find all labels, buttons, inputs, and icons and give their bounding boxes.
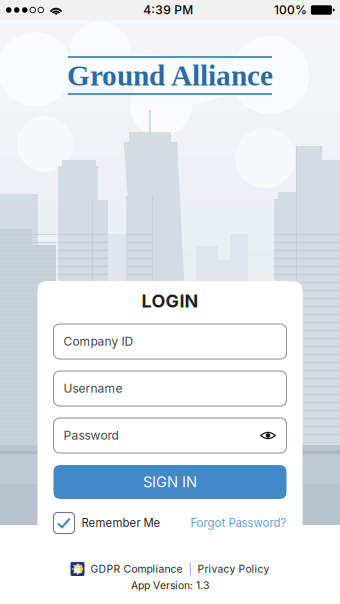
button[interactable]: GDPR Compliance — [84, 563, 188, 575]
staticText: Remember Me — [81, 516, 160, 530]
staticText: Ground Alliance — [67, 59, 273, 92]
staticText: 100% — [274, 3, 307, 17]
button[interactable]: Privacy Policy — [191, 563, 269, 575]
button[interactable]: Forgot Password? — [163, 513, 286, 533]
button[interactable]: Password — [53, 418, 286, 453]
staticText: GDPR Compliance — [90, 563, 182, 575]
staticText: 4:39 PM — [143, 3, 193, 17]
staticText: Username — [63, 381, 122, 396]
staticText: SIGN IN — [143, 473, 197, 491]
staticText: LOGIN — [141, 290, 198, 312]
staticText: App Version: 1.3 — [131, 579, 209, 592]
button[interactable]: SIGN IN — [53, 465, 286, 499]
staticText: Company ID — [63, 334, 133, 349]
staticText: | — [188, 563, 191, 575]
button[interactable]: Remember Me — [53, 513, 163, 533]
button[interactable]: Username — [53, 371, 286, 406]
staticText: Forgot Password? — [190, 516, 286, 530]
button[interactable]: Company ID — [53, 324, 286, 359]
staticText: Password — [63, 428, 118, 443]
staticText: Privacy Policy — [197, 563, 269, 575]
